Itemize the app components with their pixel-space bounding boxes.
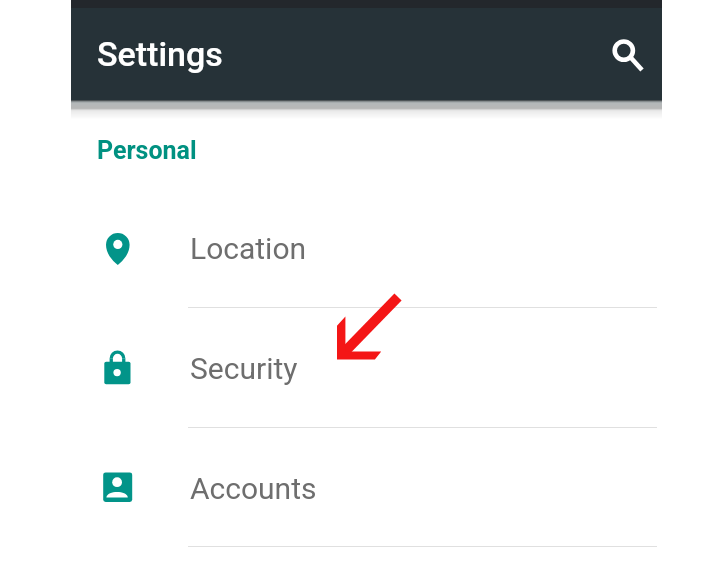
button[interactable]: Location [71, 187, 662, 307]
staticText: Personal [97, 136, 197, 164]
button[interactable]: Security [71, 307, 662, 427]
staticText: Settings [97, 34, 223, 74]
staticText: Accounts [190, 471, 317, 506]
staticText: Location [190, 231, 307, 266]
button[interactable]: Accounts [71, 426, 662, 546]
button[interactable]: Search [595, 24, 651, 80]
staticText: Security [190, 351, 298, 386]
